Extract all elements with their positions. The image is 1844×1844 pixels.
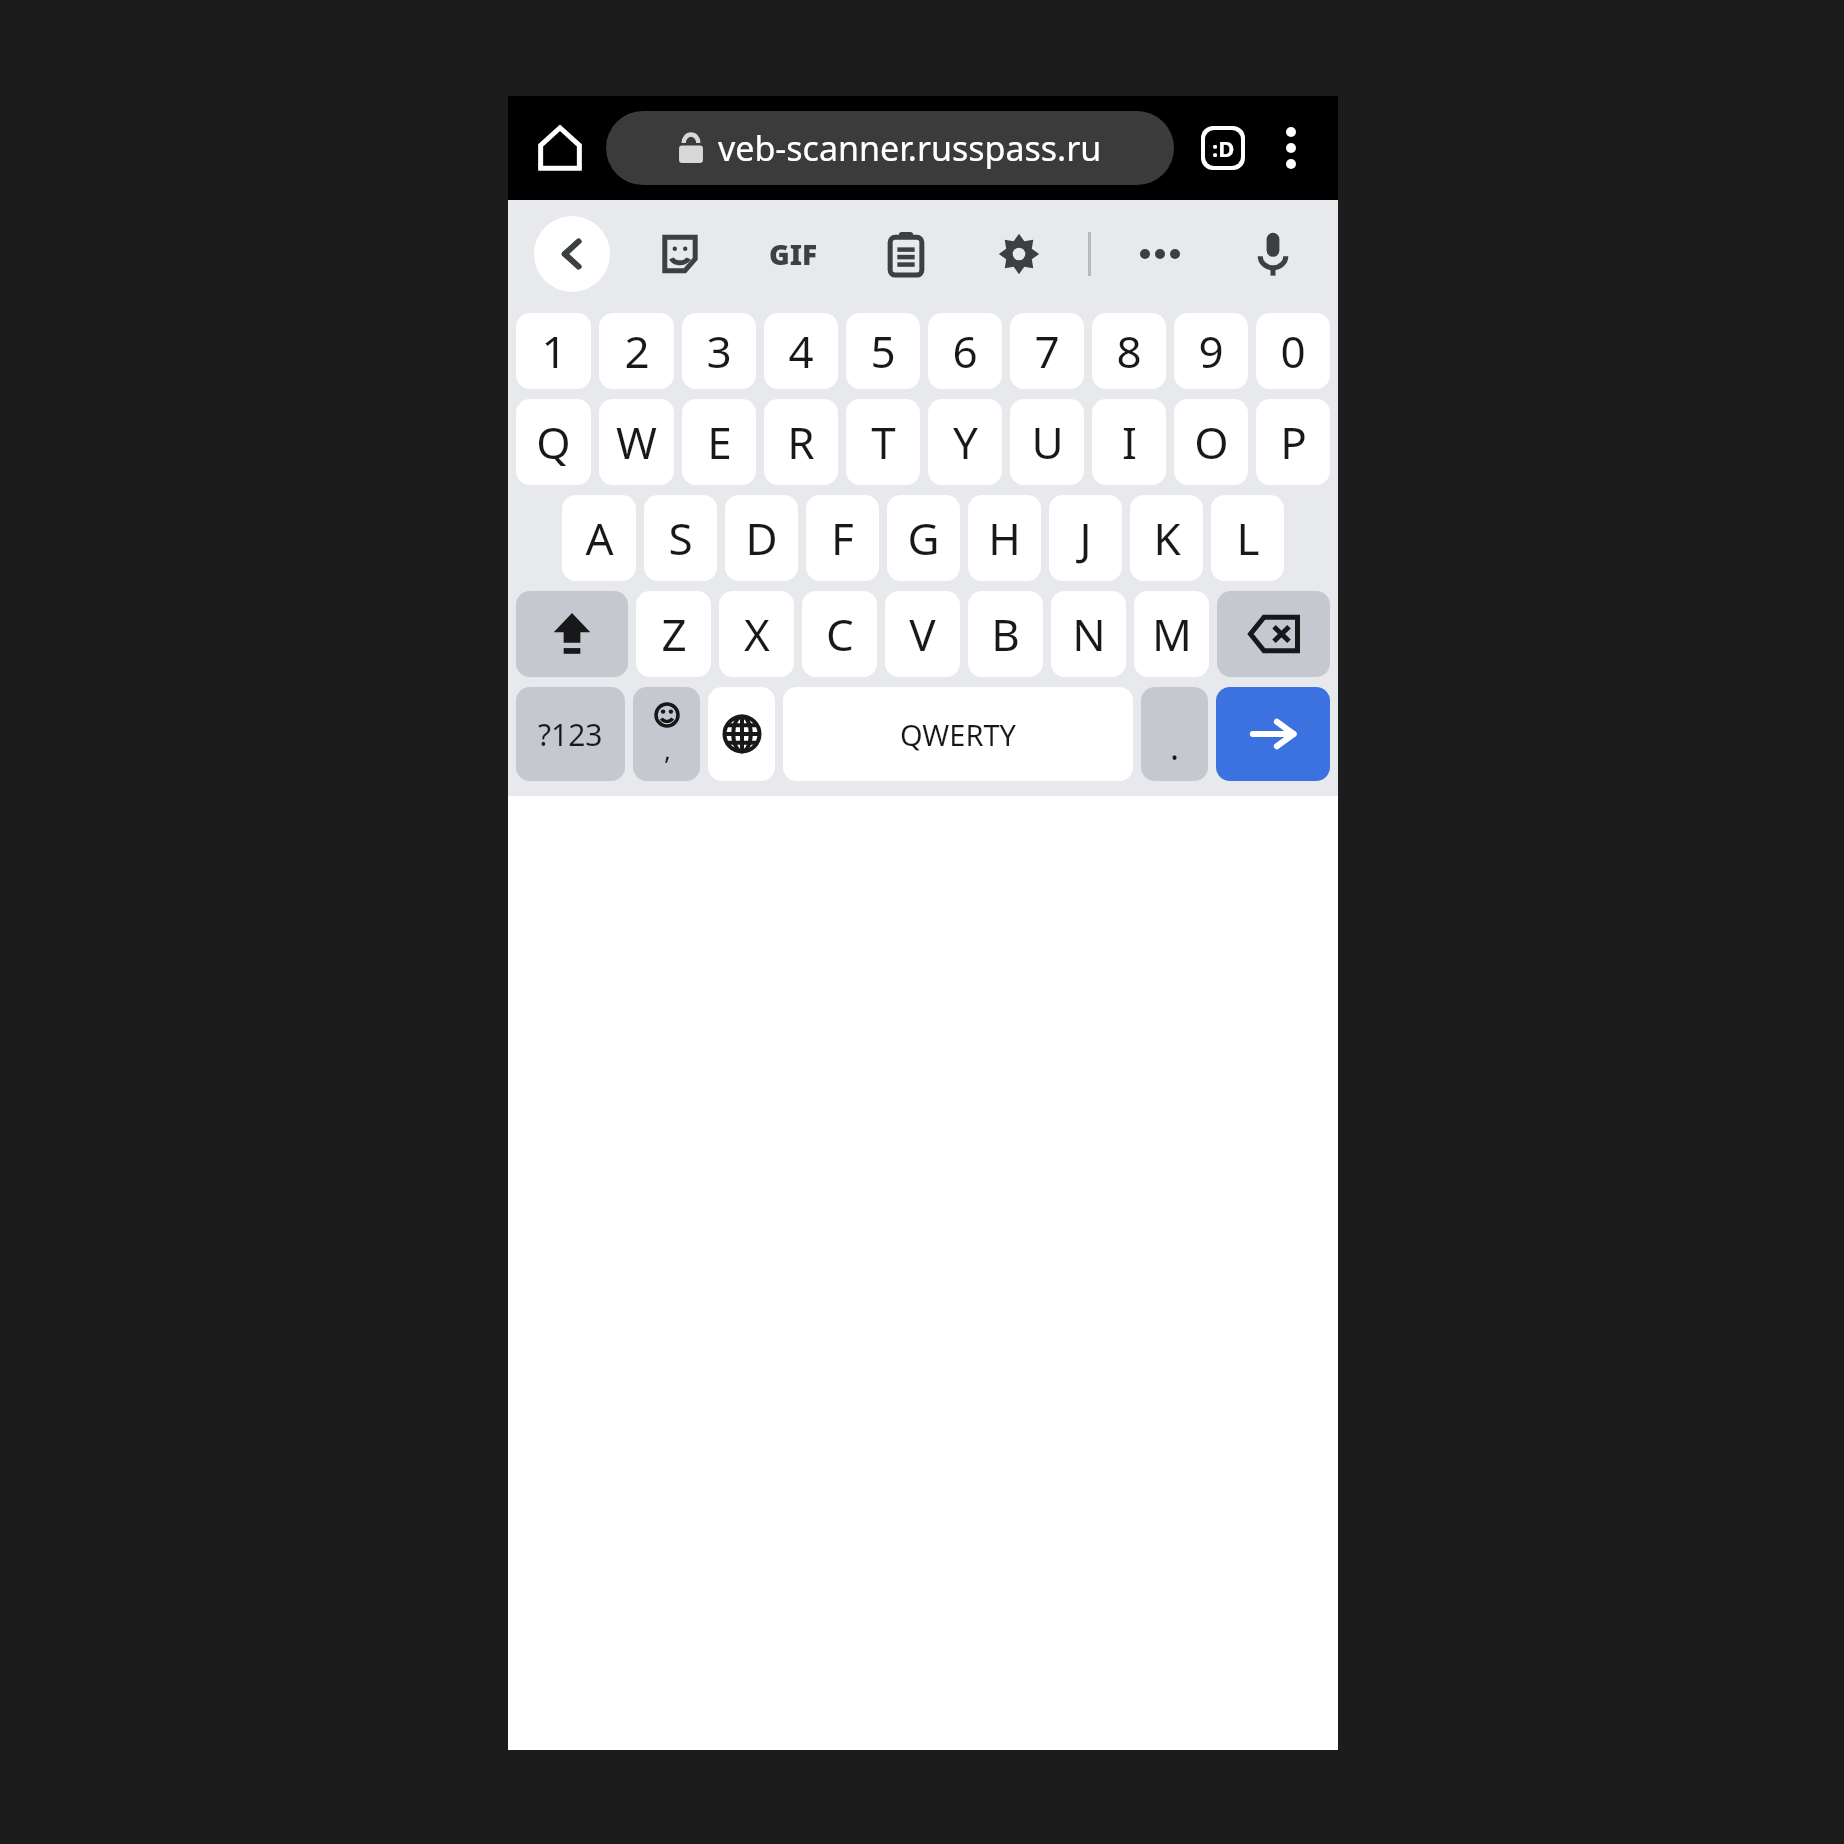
staticText: 2 [624, 321, 650, 381]
button[interactable]: 4 [764, 313, 838, 389]
staticText: W [616, 412, 657, 472]
staticText: K [1153, 508, 1181, 568]
staticText: C [826, 604, 854, 664]
button[interactable]: Home [522, 110, 598, 186]
button[interactable]: L [1211, 495, 1284, 581]
button[interactable]: Change language [708, 687, 775, 781]
button[interactable]: 0 [1256, 313, 1330, 389]
staticText: T [871, 412, 896, 472]
button[interactable]: Back [534, 216, 610, 292]
button[interactable]: U [1010, 399, 1084, 485]
button[interactable]: 5 [846, 313, 920, 389]
staticText: veb-scanner.russpass.ru [718, 125, 1102, 171]
staticText: 8 [1116, 321, 1142, 381]
staticText: A [585, 508, 614, 568]
staticText: QWERTY [900, 715, 1017, 754]
staticText: 7 [1034, 321, 1060, 381]
button[interactable]: R [764, 399, 838, 485]
staticText: I [1122, 412, 1137, 472]
button[interactable]: Voice input [1241, 222, 1305, 286]
button[interactable]: 7 [1010, 313, 1084, 389]
button[interactable]: 3 [682, 313, 756, 389]
staticText: P [1280, 412, 1307, 472]
button[interactable]: 2 [599, 313, 674, 389]
button[interactable]: X [719, 591, 794, 677]
staticText: M [1152, 604, 1192, 664]
staticText: 9 [1198, 321, 1224, 381]
button[interactable]: F [806, 495, 879, 581]
button[interactable]: 8 [1092, 313, 1166, 389]
staticText: U [1031, 412, 1064, 472]
staticText: . [1170, 724, 1180, 770]
button[interactable]: E [682, 399, 756, 485]
staticText: H [988, 508, 1021, 568]
button[interactable]: Clipboard [874, 222, 938, 286]
button[interactable]: 1 [516, 313, 591, 389]
staticText: N [1072, 604, 1106, 664]
button[interactable]: More options [1258, 115, 1324, 181]
button[interactable]: W [599, 399, 674, 485]
button[interactable]: J [1049, 495, 1122, 581]
staticText: G [907, 508, 940, 568]
button[interactable]: Z [636, 591, 711, 677]
button[interactable]: N [1051, 591, 1126, 677]
button[interactable]: C [802, 591, 877, 677]
staticText: 6 [952, 321, 978, 381]
button[interactable]: . [1141, 687, 1208, 781]
button[interactable]: 9 [1174, 313, 1248, 389]
staticText: Y [953, 412, 978, 472]
staticText: V [909, 604, 936, 664]
button[interactable]: M [1134, 591, 1209, 677]
staticText: Q [536, 412, 571, 472]
staticText: J [1079, 508, 1092, 568]
button[interactable]: ?123 [516, 687, 625, 781]
staticText: E [707, 412, 732, 472]
staticText: 5 [870, 321, 896, 381]
button[interactable]: More [1128, 222, 1192, 286]
button[interactable]: Settings [987, 222, 1051, 286]
staticText: 1 [541, 321, 567, 381]
button[interactable]: Stickers [648, 222, 712, 286]
button[interactable]: Q [516, 399, 591, 485]
button[interactable]: veb-scanner.russpass.ru [606, 111, 1174, 185]
button[interactable]: T [846, 399, 920, 485]
staticText: L [1236, 508, 1260, 568]
button[interactable]: Emoji [633, 687, 700, 781]
button[interactable]: V [885, 591, 960, 677]
staticText: B [991, 604, 1020, 664]
staticText: 0 [1280, 321, 1306, 381]
button[interactable]: K [1130, 495, 1203, 581]
staticText: Z [661, 604, 687, 664]
button[interactable]: H [968, 495, 1041, 581]
button[interactable]: Y [928, 399, 1002, 485]
staticText: S [668, 508, 693, 568]
button[interactable]: S [644, 495, 717, 581]
button[interactable]: QWERTY [783, 687, 1133, 781]
button[interactable]: GIF [761, 222, 825, 286]
button[interactable]: Backspace [1217, 591, 1330, 677]
staticText: , [664, 732, 671, 767]
button[interactable]: D [725, 495, 798, 581]
button[interactable]: I [1092, 399, 1166, 485]
button[interactable]: G [887, 495, 960, 581]
staticText: F [831, 508, 854, 568]
staticText: X [744, 604, 770, 664]
staticText: GIF [769, 235, 818, 273]
staticText: 4 [788, 321, 814, 381]
button[interactable]: B [968, 591, 1043, 677]
button[interactable]: Shift [516, 591, 628, 677]
button[interactable]: Go [1216, 687, 1330, 781]
staticText: 3 [706, 321, 732, 381]
staticText: D [745, 508, 778, 568]
button[interactable]: 6 [928, 313, 1002, 389]
staticText: ?123 [538, 714, 603, 755]
staticText: R [787, 412, 815, 472]
button[interactable]: Tabs [1188, 113, 1258, 183]
button[interactable]: O [1174, 399, 1248, 485]
button[interactable]: P [1256, 399, 1330, 485]
button[interactable]: A [562, 495, 636, 581]
staticText: :D [1212, 133, 1235, 163]
staticText: O [1194, 412, 1229, 472]
